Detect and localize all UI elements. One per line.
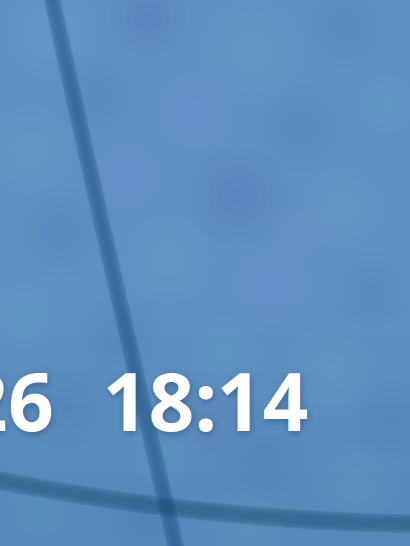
staticText: 18:14 (102, 347, 308, 453)
staticText: 26 (0, 347, 54, 453)
button[interactable]: 26 (0, 0, 410, 546)
